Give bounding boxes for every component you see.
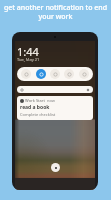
staticText: read a book — [20, 104, 50, 111]
button[interactable]: Work Start — [17, 96, 93, 120]
staticText: get another notification to end your wor… — [1, 3, 110, 21]
button[interactable]: Unlock — [51, 163, 60, 172]
staticText: 1:44 — [17, 44, 39, 59]
button[interactable]: Quick setting — [36, 69, 46, 79]
button[interactable] — [17, 86, 93, 93]
staticText: Tue, May 21 — [17, 57, 40, 62]
button[interactable]: Quick setting — [79, 69, 89, 79]
button[interactable]: Quick setting — [21, 69, 31, 79]
staticText: Work Start — [25, 98, 45, 103]
staticText: Complete checklist — [20, 112, 56, 117]
button[interactable]: Quick setting — [64, 69, 74, 79]
button[interactable]: Quick setting — [50, 69, 60, 79]
staticText: now — [47, 98, 55, 103]
